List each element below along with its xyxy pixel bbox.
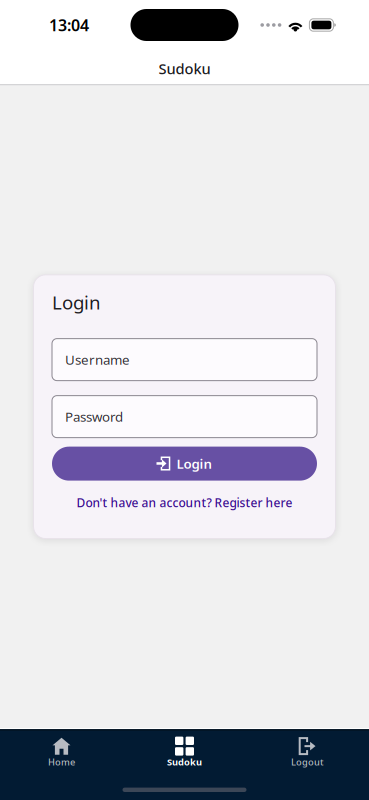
staticText: Password: [65, 408, 123, 425]
staticText: Sudoku: [158, 59, 210, 78]
button[interactable]: Sudoku: [123, 731, 246, 774]
staticText: Username: [65, 351, 130, 368]
staticText: 13:04: [49, 14, 89, 36]
staticText: Logout: [291, 756, 324, 768]
button[interactable]: Login: [52, 447, 317, 481]
staticText: Sudoku: [167, 756, 202, 768]
staticText: Don't have an account? Register here: [76, 495, 292, 510]
button[interactable]: Home: [0, 731, 123, 774]
button[interactable]: Logout: [246, 731, 369, 774]
staticText: Login: [176, 455, 212, 472]
staticText: Login: [52, 290, 101, 315]
button[interactable]: Don't have an account? Register here: [52, 481, 317, 538]
staticText: Home: [48, 756, 75, 768]
